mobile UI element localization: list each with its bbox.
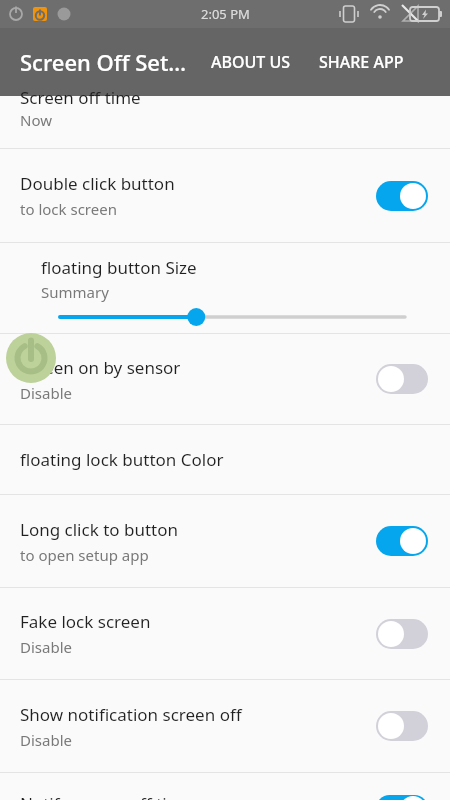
- button[interactable]: Disabled toggle: [374, 362, 430, 396]
- button[interactable]: Show notification screen off: [0, 680, 450, 772]
- staticText: floating button Size: [41, 256, 197, 279]
- button[interactable]: Enabled toggle: [374, 524, 430, 558]
- staticText: Screen off time: [20, 86, 141, 109]
- button[interactable]: Disabled toggle: [374, 709, 430, 743]
- button[interactable]: Disabled toggle: [374, 617, 430, 651]
- button[interactable]: Floating lock button: [6, 333, 56, 383]
- staticText: Screen Off Set…: [20, 47, 187, 77]
- button[interactable]: Double click button: [0, 149, 450, 242]
- staticText: Show notification screen off: [20, 703, 242, 726]
- button[interactable]: ABOUT US: [205, 28, 297, 96]
- staticText: Disable: [20, 730, 72, 750]
- staticText: Screen on by sensor: [20, 356, 181, 379]
- button[interactable]: SHARE APP: [313, 28, 410, 96]
- button[interactable]: Notify screen off time: [0, 773, 450, 800]
- staticText: Disable: [20, 383, 72, 403]
- staticText: Now: [20, 110, 52, 130]
- staticText: Notify screen off time: [20, 792, 193, 800]
- staticText: SHARE APP: [319, 51, 404, 73]
- button[interactable]: Fake lock screen: [0, 588, 450, 679]
- staticText: ABOUT US: [211, 51, 291, 73]
- button[interactable]: Screen on by sensor: [0, 334, 450, 424]
- staticText: 2:05 PM: [201, 5, 250, 23]
- staticText: Disable: [20, 637, 72, 657]
- staticText: Fake lock screen: [20, 610, 151, 633]
- button[interactable]: Long click to button: [0, 495, 450, 587]
- staticText: Double click button: [20, 172, 175, 195]
- button[interactable]: Screen off time: [0, 96, 450, 148]
- staticText: to open setup app: [20, 545, 149, 565]
- button[interactable]: Screen Off Set…: [0, 28, 205, 96]
- button[interactable]: floating button Size: [0, 243, 450, 333]
- button[interactable]: Enabled toggle: [374, 179, 430, 213]
- staticText: Long click to button: [20, 518, 179, 541]
- button[interactable]: Enabled toggle: [374, 795, 430, 800]
- staticText: floating lock button Color: [20, 448, 224, 471]
- button[interactable]: floating lock button Color: [0, 425, 450, 494]
- staticText: to lock screen: [20, 199, 117, 219]
- staticText: Summary: [41, 282, 109, 302]
